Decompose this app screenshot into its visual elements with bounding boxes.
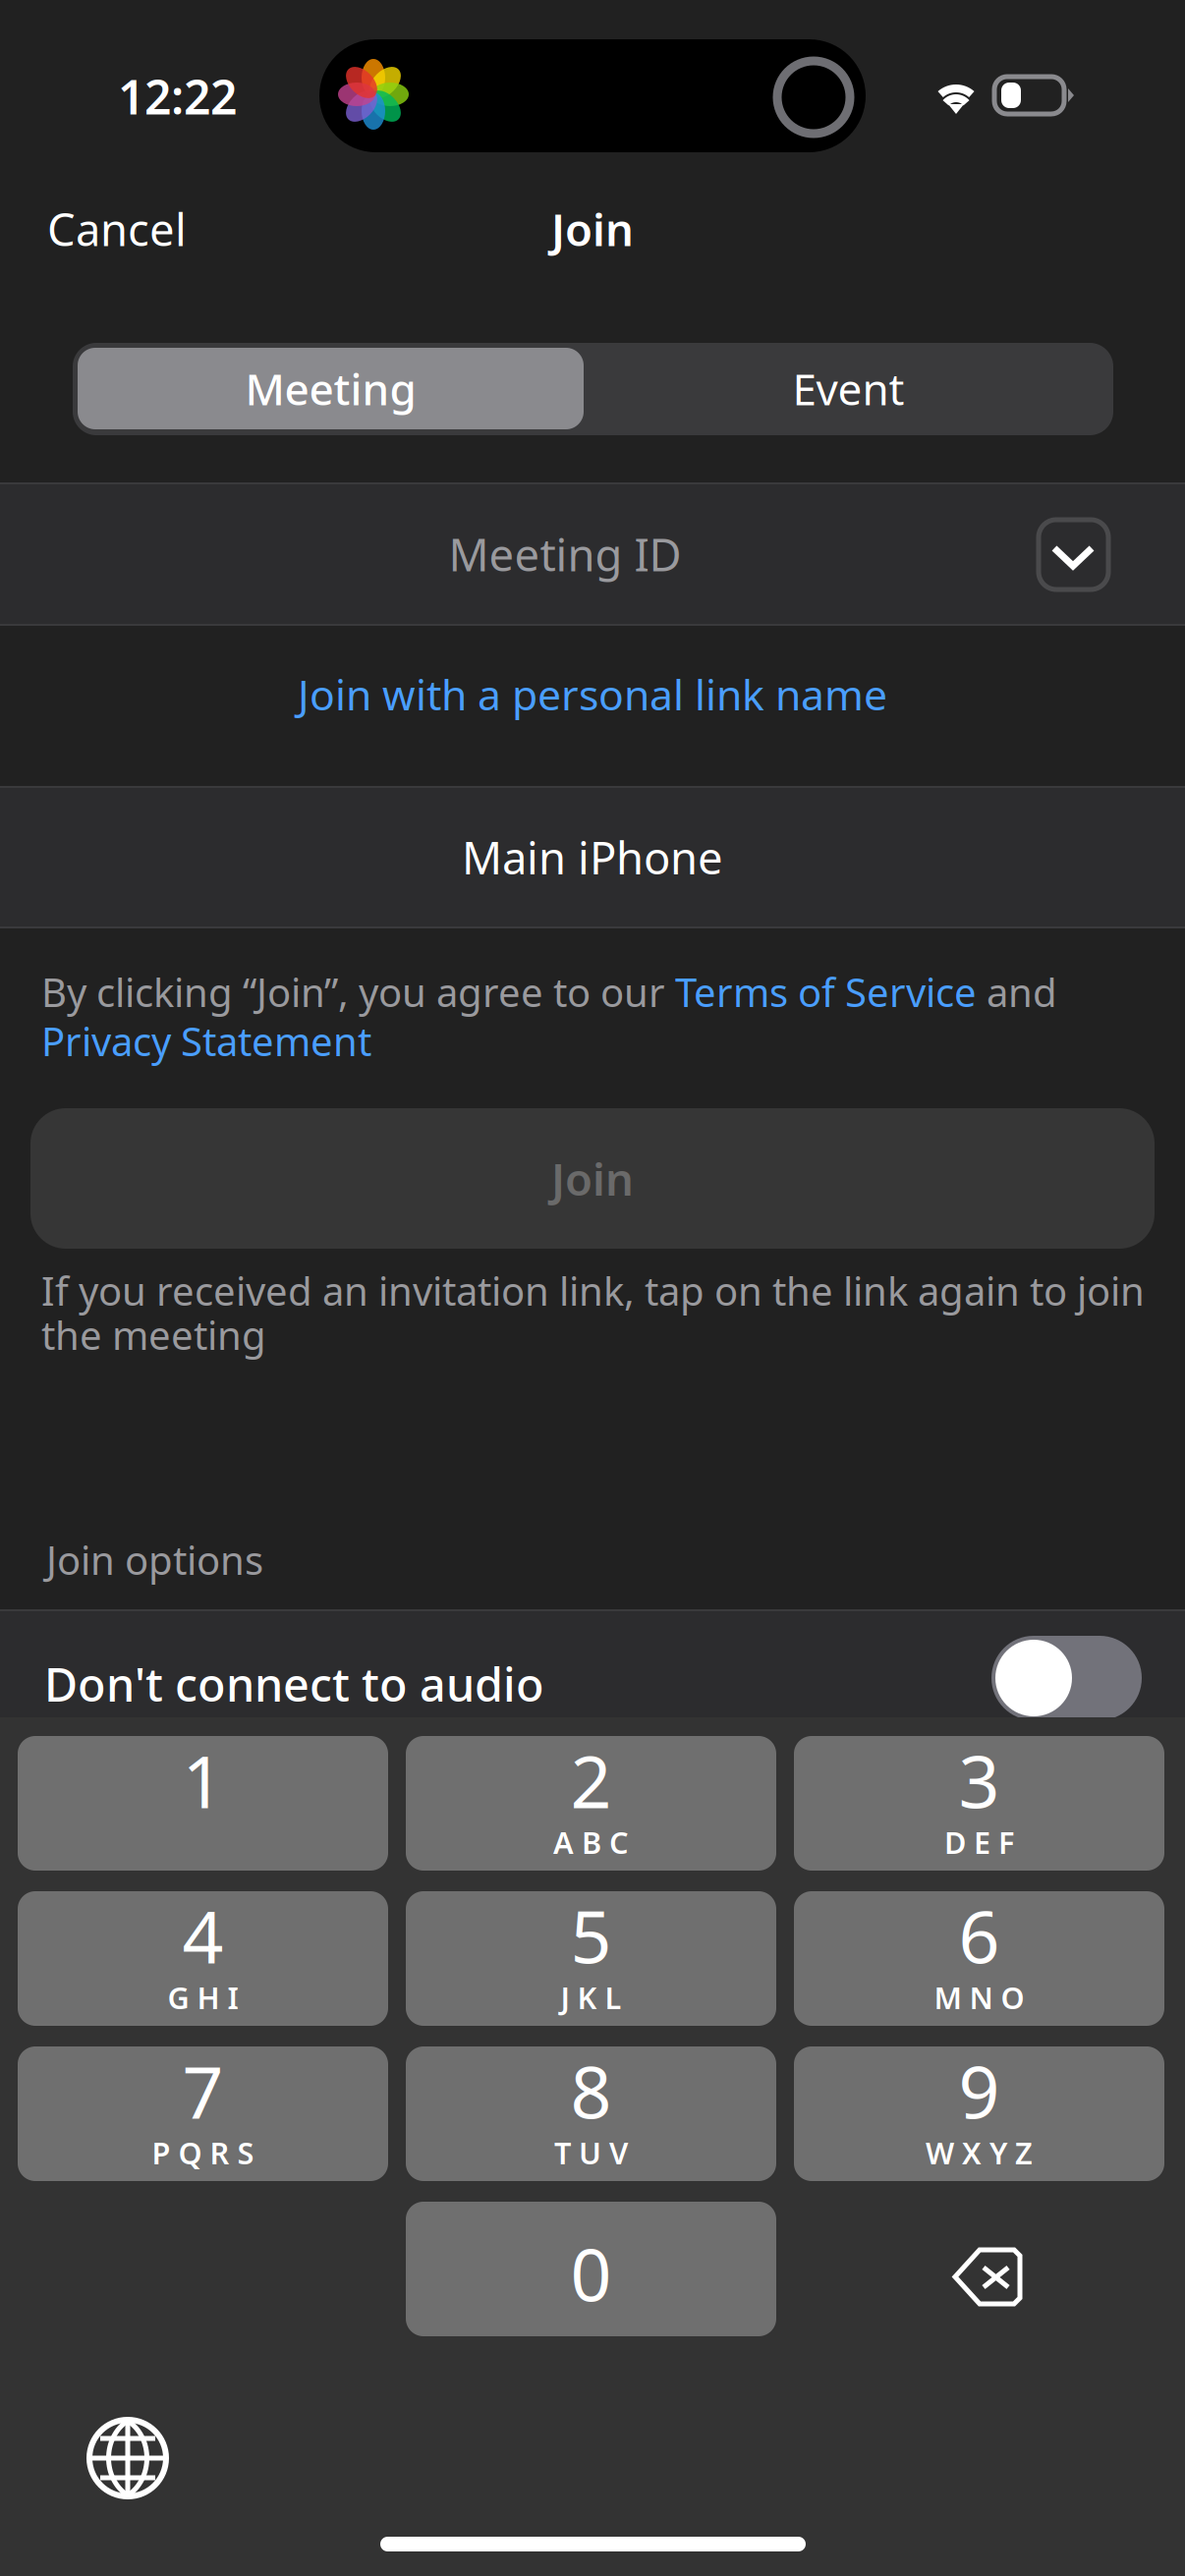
staticText: T U V bbox=[554, 2133, 628, 2173]
button[interactable]: Join bbox=[30, 1108, 1155, 1249]
staticText: A B C bbox=[553, 1822, 629, 1862]
staticText: By clicking “Join”, you agree to our bbox=[41, 966, 675, 1018]
staticText: Join bbox=[551, 1149, 634, 1208]
button[interactable]: Event bbox=[589, 348, 1108, 429]
button[interactable]: Meeting bbox=[78, 348, 584, 429]
staticText: J K L bbox=[561, 1977, 621, 2017]
staticText: 7 bbox=[182, 2043, 224, 2139]
button[interactable]: 4 bbox=[18, 1891, 388, 2026]
staticText: 1 bbox=[182, 1732, 224, 1828]
button[interactable]: Delete bbox=[794, 2202, 1164, 2336]
staticText: P Q R S bbox=[152, 2133, 254, 2173]
staticText: 4 bbox=[182, 1888, 224, 1983]
staticText: 0 bbox=[570, 2226, 612, 2321]
staticText: 6 bbox=[959, 1888, 1000, 1983]
button[interactable]: Next keyboard bbox=[89, 2420, 166, 2496]
staticText: the meeting bbox=[41, 1309, 266, 1361]
staticText: 8 bbox=[570, 2043, 612, 2139]
button[interactable]: 0 bbox=[406, 2202, 776, 2336]
staticText: Join bbox=[551, 199, 634, 258]
button[interactable]: 3 bbox=[794, 1736, 1164, 1871]
staticText: Privacy Statement bbox=[41, 1015, 371, 1067]
button[interactable]: Don't connect to audio bbox=[991, 1636, 1142, 1720]
button[interactable]: 7 bbox=[18, 2046, 388, 2181]
staticText: 5 bbox=[570, 1888, 612, 1983]
staticText: 9 bbox=[959, 2043, 1000, 2139]
staticText: M N O bbox=[934, 1977, 1024, 2017]
staticText: G H I bbox=[168, 1977, 238, 2017]
staticText: 2 bbox=[570, 1732, 612, 1828]
staticText: Don't connect to audio bbox=[44, 1653, 544, 1714]
staticText: Terms of Service bbox=[675, 966, 977, 1018]
button[interactable]: 9 bbox=[794, 2046, 1164, 2181]
button[interactable]: 2 bbox=[406, 1736, 776, 1871]
staticText: W X Y Z bbox=[926, 2133, 1033, 2173]
staticText: Cancel bbox=[47, 199, 187, 258]
staticText: Event bbox=[792, 360, 904, 417]
button[interactable]: Recent meeting IDs bbox=[1039, 520, 1108, 589]
staticText: and bbox=[977, 966, 1057, 1018]
button[interactable]: 8 bbox=[406, 2046, 776, 2181]
staticText: If you received an invitation link, tap … bbox=[41, 1264, 1145, 1317]
staticText: Meeting bbox=[245, 360, 416, 417]
button[interactable]: 1 bbox=[18, 1736, 388, 1871]
button[interactable]: 6 bbox=[794, 1891, 1164, 2026]
staticText: Join with a personal link name bbox=[298, 666, 887, 722]
staticText: Main iPhone bbox=[462, 828, 723, 887]
staticText: D E F bbox=[944, 1822, 1014, 1862]
staticText: Meeting ID bbox=[449, 525, 681, 584]
button[interactable]: Join with a personal link name bbox=[0, 626, 1185, 786]
button[interactable]: 5 bbox=[406, 1891, 776, 2026]
staticText: Join options bbox=[46, 1534, 263, 1586]
staticText: 3 bbox=[959, 1732, 1000, 1828]
staticText: 12:22 bbox=[118, 65, 237, 127]
button[interactable]: Cancel bbox=[0, 175, 303, 283]
